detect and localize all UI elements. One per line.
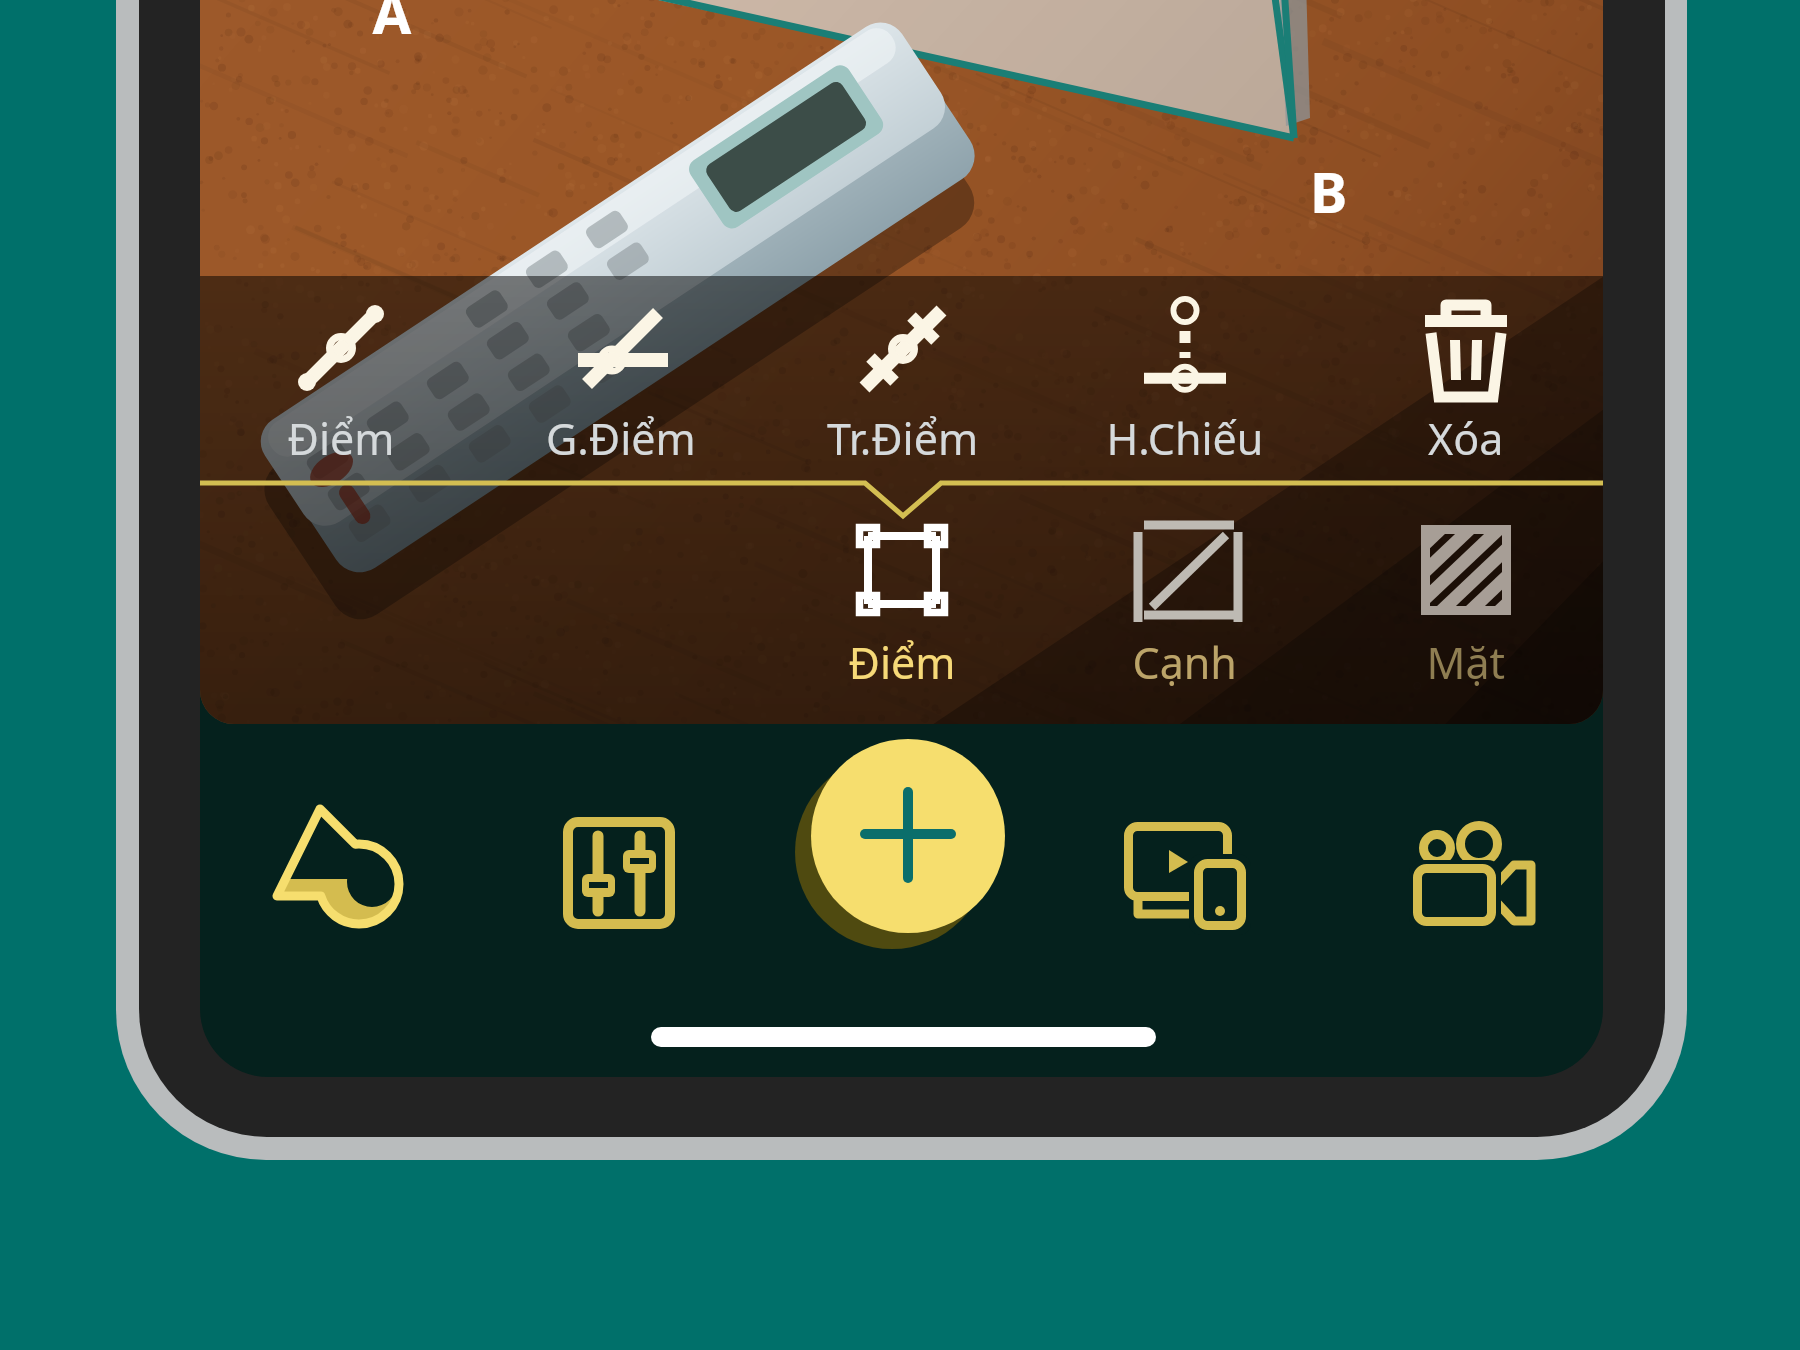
button[interactable]: Tr.Điểm — [761, 288, 1042, 473]
button[interactable]: Cài đặt — [519, 766, 719, 966]
button[interactable]: Cạnh — [1043, 500, 1324, 700]
button[interactable]: Xóa — [1322, 288, 1603, 473]
button[interactable]: Trình chiếu — [1093, 766, 1293, 966]
button[interactable]: H.Chiếu — [1042, 288, 1323, 473]
button[interactable]: G.Điểm — [481, 288, 762, 473]
button[interactable]: Thêm — [811, 739, 1005, 933]
button[interactable]: Điểm — [762, 500, 1043, 700]
button[interactable]: Trang chủ — [240, 766, 440, 966]
button[interactable]: Mặt — [1324, 500, 1605, 700]
button[interactable]: Điểm — [200, 288, 481, 473]
button[interactable]: Quay video — [1370, 766, 1570, 966]
